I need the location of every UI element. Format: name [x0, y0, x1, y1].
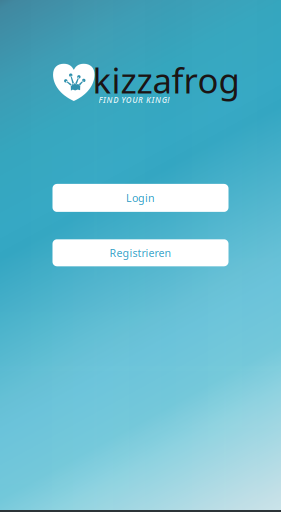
staticText: FIND YOUR KING!	[98, 95, 169, 105]
staticText: Login	[126, 191, 155, 205]
button[interactable]: Registrieren	[52, 239, 228, 266]
button[interactable]: Login	[52, 184, 228, 212]
staticText: kizzafrog	[92, 57, 239, 103]
staticText: Registrieren	[109, 246, 171, 260]
